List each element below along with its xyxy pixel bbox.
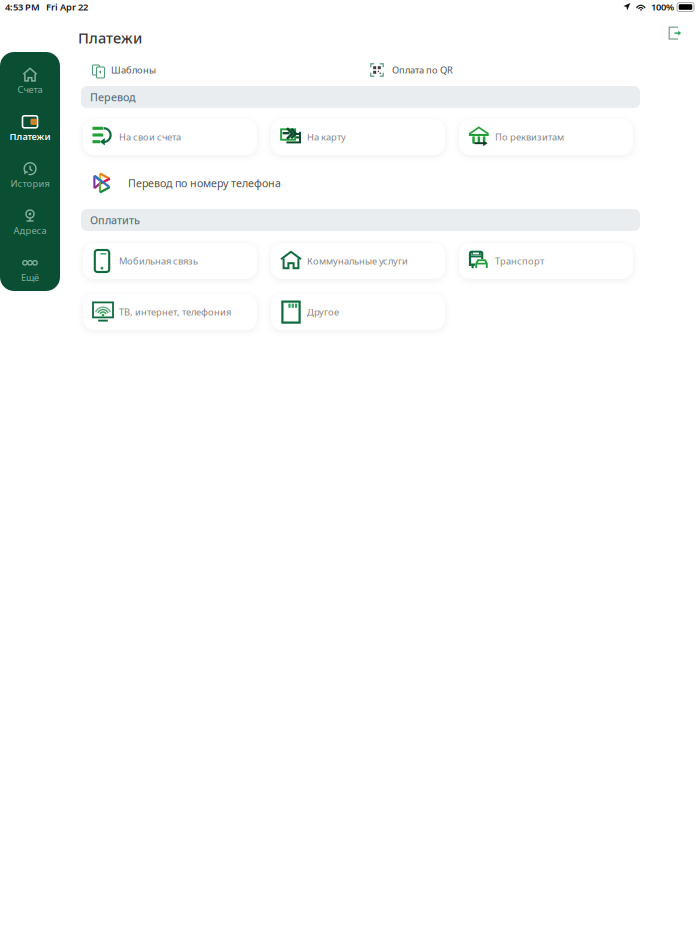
staticText: Fri Apr 22: [46, 1, 88, 13]
button[interactable]: Коммунальные услуги: [271, 243, 445, 279]
button[interactable]: Оплата по QR: [369, 58, 569, 82]
staticText: Мобильная связь: [119, 255, 198, 267]
staticText: Платежи: [9, 130, 50, 143]
button[interactable]: Платежи: [0, 108, 60, 149]
staticText: Перевод: [90, 90, 136, 104]
staticText: 4:53 PM: [5, 1, 40, 13]
button[interactable]: Шаблоны: [88, 58, 338, 82]
button[interactable]: История: [0, 155, 60, 196]
staticText: Счета: [17, 83, 42, 96]
staticText: ТВ, интернет, телефония: [119, 306, 231, 318]
staticText: Платежи: [78, 28, 142, 47]
staticText: Другое: [307, 306, 339, 318]
button[interactable]: ТВ, интернет, телефония: [83, 294, 257, 330]
button[interactable]: Ещё: [0, 249, 60, 290]
staticText: Оплата по QR: [392, 64, 453, 76]
staticText: История: [10, 177, 49, 190]
staticText: Шаблоны: [111, 64, 156, 76]
button[interactable]: Выход: [661, 20, 689, 46]
button[interactable]: Счета: [0, 61, 60, 102]
button[interactable]: По реквизитам: [459, 119, 633, 155]
button[interactable]: Адреса: [0, 202, 60, 243]
button[interactable]: Транспорт: [459, 243, 633, 279]
staticText: На карту: [307, 131, 346, 143]
staticText: Оплатить: [90, 213, 140, 227]
staticText: Транспорт: [495, 255, 544, 267]
staticText: 100%: [651, 1, 674, 13]
button[interactable]: Перевод по номеру телефона: [92, 170, 392, 196]
staticText: По реквизитам: [495, 131, 564, 143]
button[interactable]: Другое: [271, 294, 445, 330]
button[interactable]: На свои счета: [83, 119, 257, 155]
button[interactable]: На карту: [271, 119, 445, 155]
staticText: Перевод по номеру телефона: [128, 176, 281, 190]
button[interactable]: Мобильная связь: [83, 243, 257, 279]
staticText: На свои счета: [119, 131, 181, 143]
staticText: Ещё: [21, 271, 39, 284]
staticText: Адреса: [13, 224, 46, 237]
staticText: Коммунальные услуги: [307, 255, 408, 267]
